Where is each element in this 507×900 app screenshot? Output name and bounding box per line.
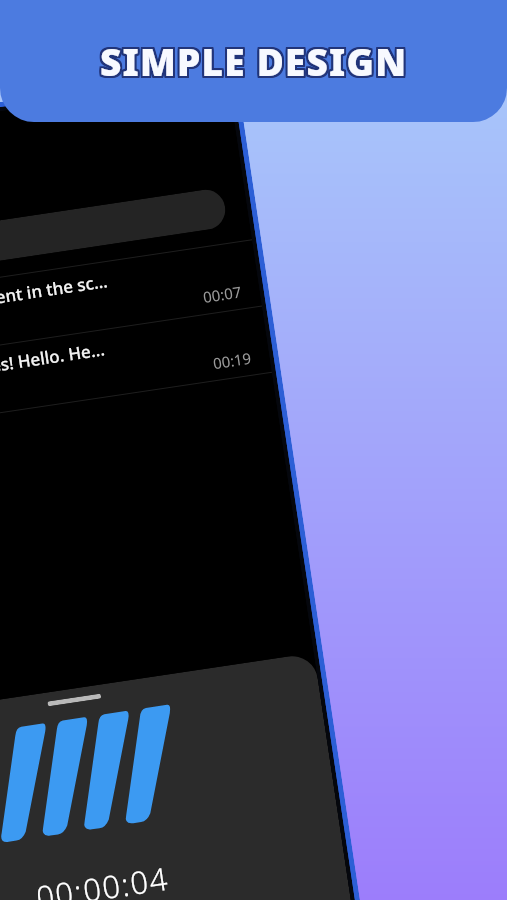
staticText: Hello very much hello. Yes! Hello. He... <box>0 337 106 406</box>
staticText: SIMPLE DESIGN <box>98 37 406 87</box>
staticText: SIMPLE DESIGN <box>101 38 409 88</box>
button[interactable] <box>0 187 228 292</box>
staticText: SIMPLE DESIGN <box>101 36 409 86</box>
staticText: SIMPLE DESIGN <box>99 35 407 85</box>
staticText: SIMPLE DESIGN <box>99 38 407 88</box>
staticText: SIMPLE DESIGN <box>100 38 408 88</box>
staticText: SIMPLE DESIGN <box>98 38 406 88</box>
staticText: 00:19 <box>212 348 253 373</box>
staticText: SIMPLE DESIGN <box>102 36 410 86</box>
staticText: SIMPLE DESIGN <box>101 37 409 87</box>
staticText: SIMPLE DESIGN <box>99 36 407 86</box>
staticText: SIMPLE DESIGN <box>100 34 408 84</box>
button[interactable]: This is a good way to present in the sc.… <box>0 240 262 378</box>
button[interactable]: Hello very much hello. Yes! Hello. He... <box>0 306 272 444</box>
staticText: SIMPLE DESIGN <box>101 35 409 85</box>
staticText: SIMPLE DESIGN <box>102 35 410 85</box>
staticText: SIMPLE DESIGN <box>100 36 408 86</box>
staticText: 00:00:04 <box>33 857 172 900</box>
staticText: 00:07 <box>202 281 243 307</box>
staticText: SIMPLE DESIGN <box>100 37 408 87</box>
staticText: SIMPLE DESIGN <box>98 34 406 84</box>
staticText: SIMPLE DESIGN <box>101 34 409 84</box>
staticText: SIMPLE DESIGN <box>99 34 407 84</box>
staticText: SIMPLE DESIGN <box>102 38 410 88</box>
staticText: SIMPLE DESIGN <box>98 35 406 85</box>
staticText: SIMPLE DESIGN <box>102 34 410 84</box>
button[interactable]: SIMPLE DESIGN <box>0 0 507 122</box>
staticText: SIMPLE DESIGN <box>100 35 408 85</box>
staticText: SIMPLE DESIGN <box>98 36 406 86</box>
staticText: SIMPLE DESIGN <box>99 37 407 87</box>
staticText: This is a good way to present in the sc.… <box>0 269 109 339</box>
staticText: SIMPLE DESIGN <box>102 37 410 87</box>
